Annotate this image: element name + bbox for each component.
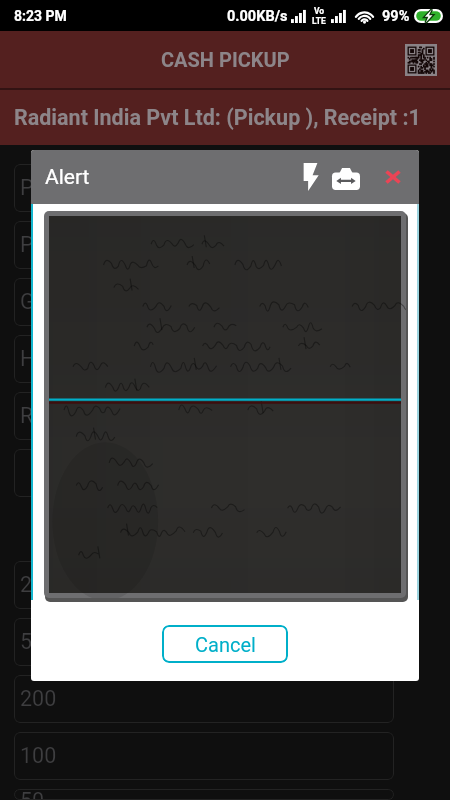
staticText: Pickup Person bbox=[20, 175, 158, 200]
staticText: 99% bbox=[382, 8, 410, 25]
button[interactable]: Toggle flash bbox=[293, 156, 329, 198]
button[interactable]: Pickup Date bbox=[14, 221, 394, 269]
button[interactable] bbox=[14, 449, 394, 497]
button[interactable]: 500 bbox=[14, 618, 394, 666]
button[interactable]: Scan QR code bbox=[405, 44, 437, 76]
staticText: Radiant India Pvt Ltd: (Pickup ), Receip… bbox=[14, 105, 421, 130]
staticText: House No bbox=[20, 346, 115, 371]
staticText: LTE bbox=[312, 16, 326, 26]
staticText: 2000 bbox=[20, 572, 69, 597]
staticText: Vo bbox=[314, 6, 325, 16]
staticText: 100 bbox=[20, 743, 57, 768]
staticText: Alert bbox=[45, 165, 90, 190]
button[interactable]: House No bbox=[14, 335, 394, 383]
staticText: 0.00KB/s bbox=[227, 8, 288, 25]
button[interactable]: 200 bbox=[14, 675, 394, 723]
staticText: Given By bbox=[20, 289, 103, 314]
staticText: Cancel bbox=[195, 633, 256, 656]
button[interactable]: 2000 bbox=[14, 561, 394, 609]
button[interactable]: Given By bbox=[14, 278, 394, 326]
button[interactable]: Cancel bbox=[162, 625, 288, 663]
button[interactable]: Switch camera bbox=[327, 156, 365, 198]
staticText: 8:23 PM bbox=[14, 8, 67, 24]
staticText: CASH PICKUP bbox=[161, 48, 290, 71]
button[interactable]: 100 bbox=[14, 732, 394, 780]
button[interactable]: Pickup Person bbox=[14, 164, 394, 212]
button[interactable]: 50 bbox=[14, 789, 394, 800]
staticText: 50 bbox=[20, 789, 45, 799]
staticText: 200 bbox=[20, 686, 57, 711]
staticText: Remarks bbox=[20, 403, 105, 428]
button[interactable]: Remarks bbox=[14, 392, 394, 440]
button[interactable]: Close bbox=[373, 156, 413, 198]
staticText: 500 bbox=[20, 629, 57, 654]
staticText: Pickup Date bbox=[20, 232, 135, 257]
